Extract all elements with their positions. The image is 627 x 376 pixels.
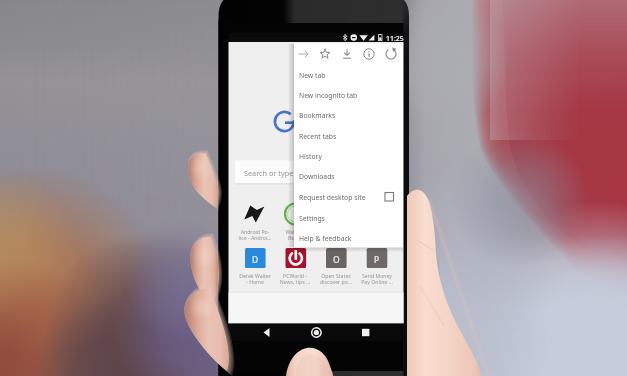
staticText: Bookmarks [299,111,336,120]
staticText: PCWorld - News, tips ... [276,272,314,376]
button[interactable]: Android Po- lice - Androi... [236,228,274,376]
staticText: New incognito tab [299,91,358,100]
staticText: D [252,254,259,266]
button[interactable]: Derek Walter - Home [236,272,274,376]
button[interactable]: New tab [294,65,403,85]
button[interactable]: Settings [294,208,403,228]
staticText: New tab [299,71,326,80]
staticText: Android Po- lice - Androi... [236,228,274,376]
button[interactable]: Request desktop site [294,187,403,207]
staticText: Derek Walter - Home [236,272,274,376]
button[interactable]: PCWorld - News, tips ... [276,272,314,376]
staticText: Open States discover po... [318,228,356,376]
button[interactable]: Downloads [294,166,403,186]
staticText: Open States discover po... [317,272,355,376]
button[interactable]: History [294,146,403,166]
button[interactable]: Open States discover po... [317,272,355,376]
button[interactable]: New incognito tab [294,85,403,105]
staticText: History [299,152,322,161]
staticText: Recent tabs [299,132,337,141]
staticText: WebSit... Beyo... [277,228,315,376]
staticText: P [374,254,380,266]
staticText: Downloads [299,172,335,181]
staticText: Request desktop site [299,193,366,202]
staticText: O [333,254,340,266]
staticText: Send Money Pay Online ... [358,228,396,376]
button[interactable]: Send Money Pay Online ... [358,272,396,376]
button[interactable]: Send Money Pay Online ... [358,228,396,376]
staticText: Help & feedback [299,234,352,243]
staticText: Search or type URL [244,168,309,178]
staticText: Settings [299,214,325,223]
button[interactable]: Bookmarks [294,105,403,125]
button[interactable]: Recent tabs [294,126,403,146]
button[interactable]: Open States discover po... [318,228,356,376]
button[interactable]: WebSit... Beyo... [277,228,315,376]
staticText: 11:25 [386,34,404,43]
staticText: Send Money Pay Online ... [358,272,396,376]
button[interactable]: Help & feedback [294,228,403,248]
